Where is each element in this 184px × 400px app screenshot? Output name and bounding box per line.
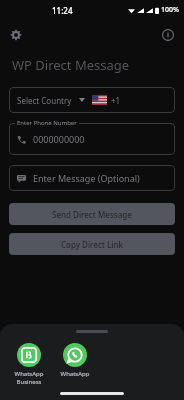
button[interactable]: Copy Direct Link	[9, 233, 175, 255]
staticText: Select Country	[17, 95, 72, 106]
staticText: Send Direct Message	[52, 209, 132, 220]
staticText: 11:24	[52, 5, 73, 16]
button[interactable]: WhatsApp Business	[6, 341, 52, 388]
button[interactable]: Send Direct Message	[9, 203, 175, 225]
button[interactable]: Select Country	[9, 87, 175, 113]
button[interactable]: Info	[156, 23, 180, 47]
button[interactable]: WhatsApp	[52, 341, 98, 380]
staticText: Enter Phone Number	[17, 119, 77, 127]
staticText: WhatsApp	[52, 370, 98, 378]
staticText: Copy Direct Link	[61, 239, 123, 250]
staticText: WhatsApp Business	[6, 370, 52, 386]
staticText: Enter Message (Optional)	[33, 172, 140, 184]
button[interactable]: Enter Message (Optional)	[9, 165, 175, 191]
staticText: 0000000000	[33, 133, 85, 145]
button[interactable]: Settings	[4, 23, 28, 47]
staticText: WP Direct Message	[12, 56, 130, 74]
staticText: +1	[111, 95, 121, 106]
button[interactable]	[9, 123, 175, 155]
staticText: 100%	[161, 5, 179, 15]
